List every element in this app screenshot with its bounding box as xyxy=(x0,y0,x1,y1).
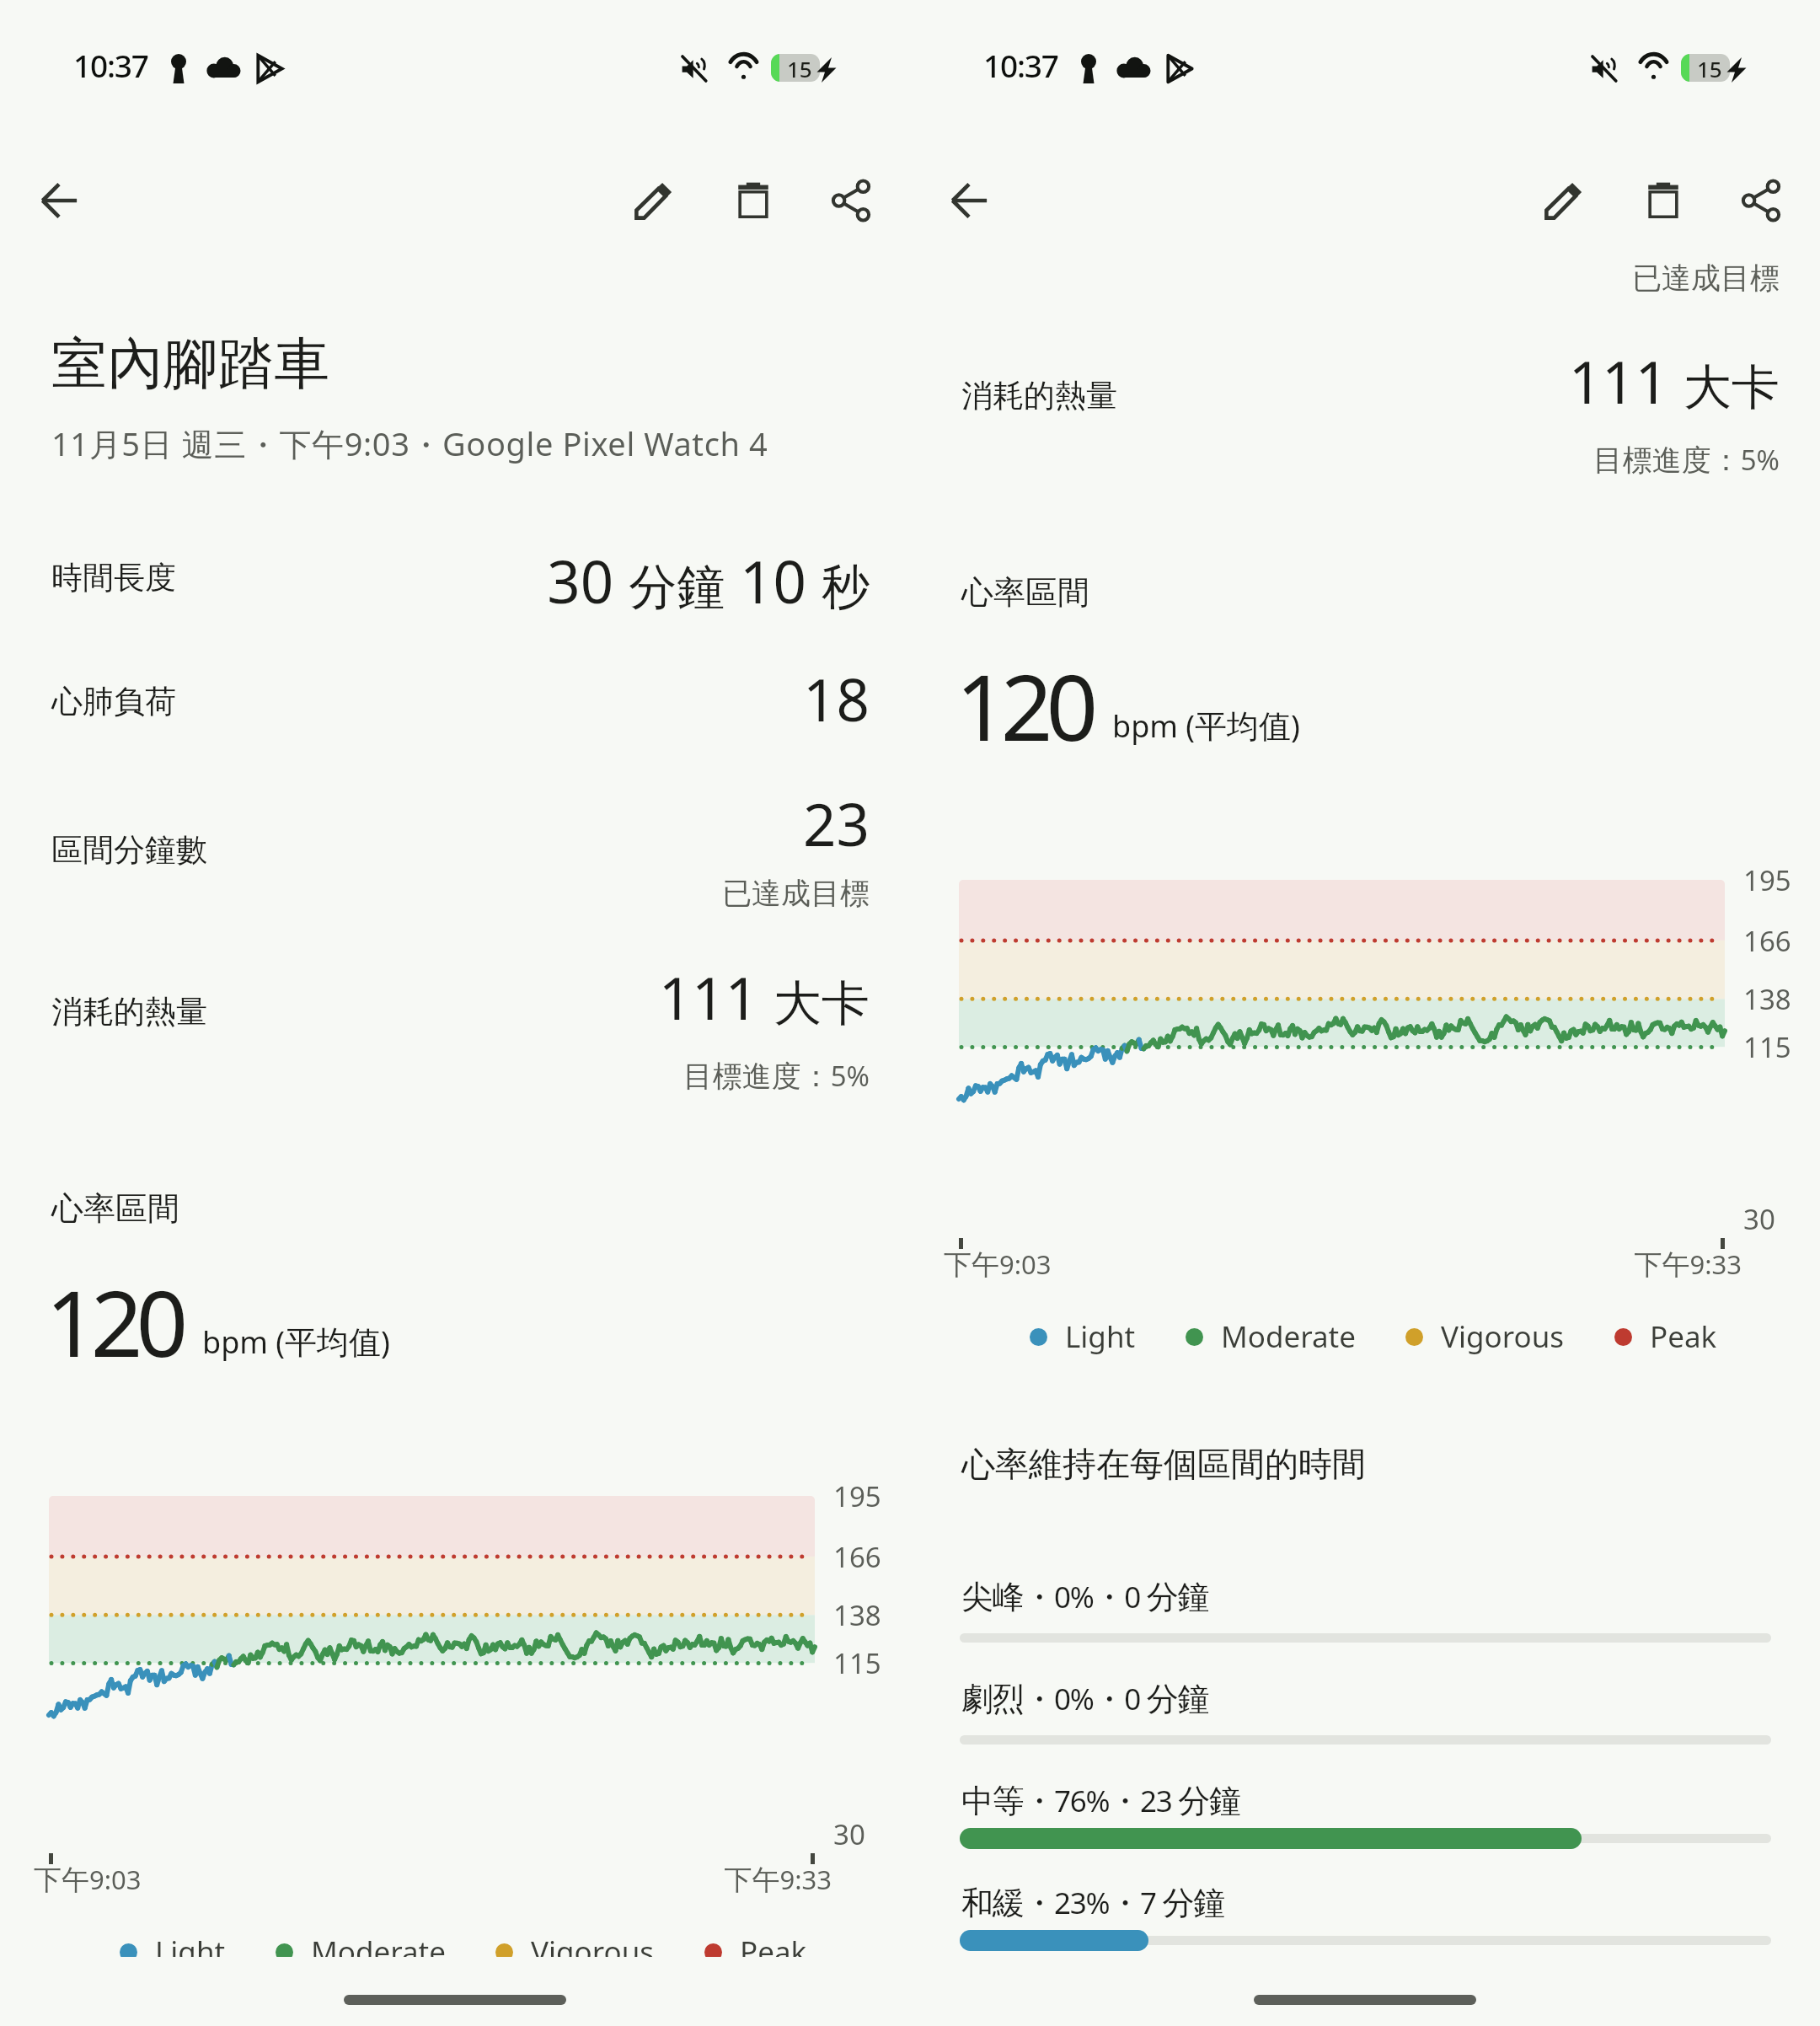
staticText: 11月5日 週三・下午9:03・Google Pixel Watch 4 xyxy=(51,421,768,465)
staticText: 120 xyxy=(45,1260,182,1384)
staticText: 166 xyxy=(1743,922,1791,960)
staticText: 195 xyxy=(1743,861,1791,899)
button[interactable]: Delete xyxy=(1619,157,1707,244)
staticText: 下午9:03 xyxy=(34,1862,142,1898)
button[interactable]: Peak xyxy=(704,1932,807,1972)
button[interactable]: Back xyxy=(925,157,1013,244)
button[interactable]: 劇烈・0%・0 分鐘 xyxy=(910,1665,1820,1746)
button[interactable]: Share xyxy=(1717,157,1805,244)
staticText: Moderate xyxy=(311,1932,446,1972)
staticText: 心率維持在每個區間的時間 xyxy=(961,1443,1366,1485)
staticText: 111 大卡 xyxy=(1021,341,1780,421)
button[interactable]: Delete xyxy=(709,157,797,244)
staticText: 115 xyxy=(833,1644,881,1682)
staticText: 23 xyxy=(111,784,870,863)
button[interactable]: 時間長度 xyxy=(0,515,910,602)
staticText: 時間長度 xyxy=(51,558,176,598)
staticText: 消耗的熱量 xyxy=(961,376,1117,415)
button[interactable]: Moderate xyxy=(276,1932,446,1972)
button[interactable]: 消耗的熱量 xyxy=(0,931,910,1096)
staticText: 111 大卡 xyxy=(111,957,870,1037)
staticText: Peak xyxy=(740,1932,807,1972)
button[interactable]: Light xyxy=(1030,1316,1136,1357)
staticText: 30 xyxy=(1743,1200,1775,1238)
button[interactable]: Moderate xyxy=(1186,1316,1356,1357)
button[interactable]: 中等・76%・23 分鐘 xyxy=(910,1767,1820,1848)
staticText: 中等・76%・23 分鐘 xyxy=(961,1781,1240,1822)
staticText: Peak xyxy=(1650,1316,1717,1357)
staticText: 115 xyxy=(1743,1028,1791,1066)
staticText: Light xyxy=(155,1932,226,1972)
staticText: 下午9:33 xyxy=(983,1246,1742,1283)
staticText: 15 xyxy=(787,54,812,82)
staticText: 已達成目標 xyxy=(111,875,870,912)
staticText: 10:37 xyxy=(983,44,1058,86)
staticText: 30 分鐘 10 秒 xyxy=(111,541,870,620)
staticText: Light xyxy=(1065,1316,1136,1357)
staticText: 138 xyxy=(833,1596,881,1634)
staticText: 室內腳踏車 xyxy=(51,329,329,399)
staticText: bpm (平均值) xyxy=(1112,705,1300,748)
button[interactable]: Light xyxy=(120,1932,226,1972)
staticText: 下午9:03 xyxy=(944,1246,1052,1283)
button[interactable]: Vigorous xyxy=(1405,1316,1565,1357)
staticText: 心肺負荷 xyxy=(51,682,176,721)
button[interactable]: Back xyxy=(15,157,103,244)
staticText: 消耗的熱量 xyxy=(51,992,207,1032)
staticText: 已達成目標 xyxy=(1021,260,1780,297)
staticText: 尖峰・0%・0 分鐘 xyxy=(961,1577,1209,1618)
staticText: 心率區間 xyxy=(961,572,1089,613)
button[interactable]: 區間分鐘數 xyxy=(0,758,910,914)
staticText: 15 xyxy=(1697,54,1722,82)
button[interactable]: 和緩・23%・7 分鐘 xyxy=(910,1869,1820,1950)
staticText: 18 xyxy=(111,659,870,738)
staticText: Moderate xyxy=(1221,1316,1356,1357)
staticText: 下午9:33 xyxy=(73,1862,832,1898)
staticText: 10:37 xyxy=(73,44,148,86)
staticText: 目標進度：5% xyxy=(1021,441,1780,480)
button[interactable]: 消耗的熱量 xyxy=(910,315,1820,480)
button[interactable]: 心肺負荷 xyxy=(0,633,910,726)
button[interactable]: Share xyxy=(807,157,895,244)
staticText: 166 xyxy=(833,1538,881,1576)
button[interactable]: 尖峰・0%・0 分鐘 xyxy=(910,1563,1820,1644)
staticText: 目標進度：5% xyxy=(111,1057,870,1096)
button[interactable]: Edit xyxy=(1520,157,1608,244)
staticText: 120 xyxy=(955,644,1092,768)
button[interactable]: Peak xyxy=(1614,1316,1717,1357)
staticText: 心率區間 xyxy=(51,1188,179,1229)
staticText: 138 xyxy=(1743,980,1791,1018)
staticText: bpm (平均值) xyxy=(202,1321,390,1364)
staticText: 195 xyxy=(833,1477,881,1515)
button[interactable]: Edit xyxy=(610,157,698,244)
button[interactable]: Vigorous xyxy=(495,1932,655,1972)
staticText: Vigorous xyxy=(531,1932,655,1972)
staticText: 區間分鐘數 xyxy=(51,830,207,870)
staticText: 和緩・23%・7 分鐘 xyxy=(961,1883,1224,1924)
staticText: Vigorous xyxy=(1441,1316,1565,1357)
staticText: 劇烈・0%・0 分鐘 xyxy=(961,1679,1209,1720)
staticText: 30 xyxy=(833,1815,865,1853)
